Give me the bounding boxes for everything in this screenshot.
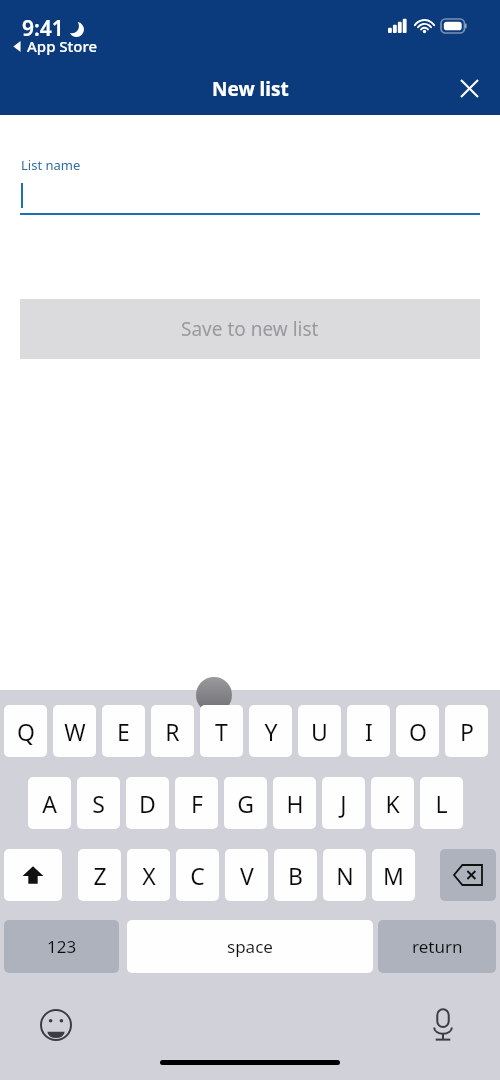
button[interactable]: D	[126, 777, 169, 829]
button[interactable]: R	[151, 705, 194, 757]
button[interactable]: Dictation	[420, 1002, 466, 1048]
button[interactable]: Y	[249, 705, 292, 757]
button[interactable]: C	[176, 849, 219, 901]
button[interactable]: 123	[4, 920, 119, 973]
button[interactable]: S	[77, 777, 120, 829]
button[interactable]: J	[322, 777, 365, 829]
button[interactable]: Q	[4, 705, 47, 757]
staticText: D	[139, 788, 156, 819]
button[interactable]: N	[323, 849, 366, 901]
staticText: T	[215, 716, 228, 747]
button[interactable]: Z	[78, 849, 121, 901]
staticText: Q	[17, 716, 35, 747]
button[interactable]: U	[298, 705, 341, 757]
staticText: F	[191, 788, 203, 819]
staticText: space	[227, 935, 273, 958]
button[interactable]: F	[175, 777, 218, 829]
staticText: 123	[47, 935, 77, 958]
button[interactable]: H	[273, 777, 316, 829]
staticText: S	[92, 788, 105, 819]
staticText: G	[237, 788, 254, 819]
staticText: V	[240, 860, 254, 891]
button[interactable]: Shift	[4, 849, 62, 901]
button[interactable]: P	[445, 705, 488, 757]
staticText: X	[142, 860, 156, 891]
staticText: P	[460, 716, 474, 747]
staticText: Y	[264, 716, 278, 747]
staticText: return	[412, 935, 463, 958]
button[interactable]: Backspace	[440, 849, 496, 901]
button[interactable]: return	[378, 920, 496, 973]
button[interactable]: Close	[449, 68, 489, 108]
staticText: Save to new list	[181, 316, 319, 342]
staticText: N	[336, 860, 354, 891]
button[interactable]: App Store	[12, 36, 98, 56]
button[interactable]: K	[371, 777, 414, 829]
button[interactable]: O	[396, 705, 439, 757]
staticText: J	[340, 788, 347, 819]
button[interactable]: E	[102, 705, 145, 757]
staticText: W	[64, 716, 86, 747]
staticText: B	[288, 860, 303, 891]
button[interactable]: G	[224, 777, 267, 829]
staticText: H	[286, 788, 304, 819]
staticText: L	[435, 788, 448, 819]
staticText: 9:41	[22, 14, 64, 43]
staticText: List name	[21, 156, 81, 174]
button[interactable]: X	[127, 849, 170, 901]
button[interactable]: I	[347, 705, 390, 757]
staticText: C	[190, 860, 205, 891]
button[interactable]: Emoji	[33, 1002, 79, 1048]
button[interactable]: V	[225, 849, 268, 901]
staticText: O	[409, 716, 427, 747]
staticText: M	[383, 860, 404, 891]
button[interactable]: L	[420, 777, 463, 829]
staticText: App Store	[27, 36, 98, 56]
staticText: E	[117, 716, 130, 747]
button[interactable]: T	[200, 705, 243, 757]
staticText: I	[365, 716, 373, 747]
staticText: Z	[93, 860, 107, 891]
staticText: R	[165, 716, 180, 747]
button[interactable]: W	[53, 705, 96, 757]
staticText: K	[385, 788, 400, 819]
staticText: A	[42, 788, 57, 819]
button[interactable]: space	[127, 920, 373, 973]
button[interactable]: Save to new list	[20, 299, 480, 359]
staticText: U	[311, 716, 328, 747]
button[interactable]: B	[274, 849, 317, 901]
staticText: New list	[212, 76, 289, 102]
button[interactable]: A	[28, 777, 71, 829]
button[interactable]: M	[372, 849, 415, 901]
